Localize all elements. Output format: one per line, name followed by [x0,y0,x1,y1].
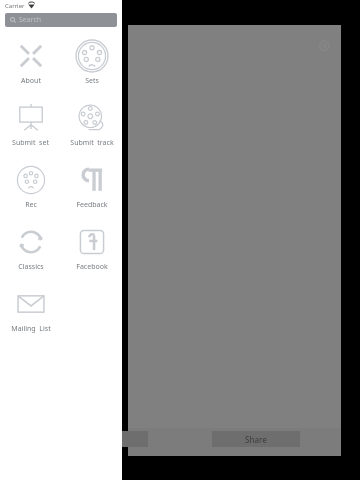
button[interactable]: Mailing List [0,283,61,345]
staticText: Search [19,15,42,25]
staticText: Share [245,434,267,445]
staticText: Mailing List [11,324,51,334]
staticText: Rec [25,200,37,210]
button[interactable]: Share [212,431,300,447]
button[interactable]: Sets [61,35,122,97]
button[interactable]: About [0,35,61,97]
staticText: Classics [18,262,44,272]
staticText: Submit track [70,138,114,148]
staticText: Carrier [5,2,25,10]
button[interactable]: Search [5,13,117,27]
button[interactable]: Submit track [61,97,122,159]
button[interactable]: Classics [0,221,61,283]
staticText: Feedback [76,200,108,210]
button[interactable]: Rec [0,159,61,221]
button[interactable]: Facebook [61,221,122,283]
button[interactable]: Feedback [61,159,122,221]
staticText: About [21,76,41,86]
button[interactable]: Submit set [0,97,61,159]
staticText: Sets [85,76,99,86]
staticText: Submit set [12,138,49,148]
staticText: Facebook [76,262,108,272]
